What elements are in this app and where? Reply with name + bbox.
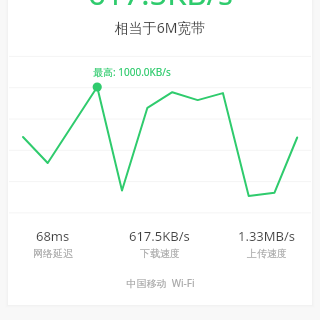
button[interactable]: 68ms (0, 227, 106, 260)
button[interactable]: 1.33MB/s (213, 227, 320, 260)
staticText: 中国移动 Wi-Fi (126, 276, 195, 290)
staticText: 下载速度 (140, 247, 180, 260)
other: Speed history chart (0, 0, 320, 320)
staticText: 上传速度 (247, 247, 287, 260)
staticText: 617.5KB/s (129, 227, 190, 245)
button[interactable]: Carrier and connection type (0, 272, 320, 294)
staticText: 1.33MB/s (238, 227, 296, 245)
staticText: 相当于6M宽带 (0, 18, 320, 37)
staticText: 617.5KB/s (88, 0, 233, 14)
staticText: 68ms (36, 227, 70, 245)
button[interactable]: 617.5KB/s (106, 227, 213, 260)
staticText: 最高: 1000.0KB/s (93, 65, 171, 79)
staticText: 网络延迟 (33, 247, 73, 260)
